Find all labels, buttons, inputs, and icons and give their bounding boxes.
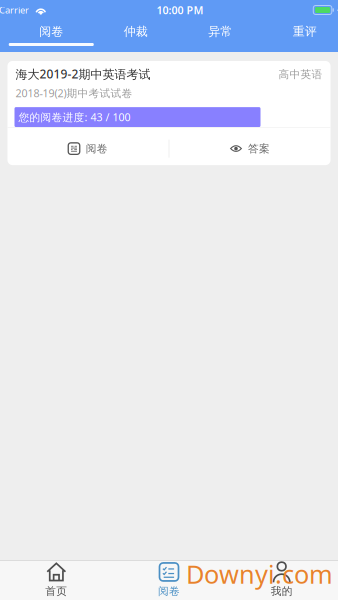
staticText: 您的阅卷进度: 43 / 100 (18, 110, 130, 124)
button[interactable]: 重评 (262, 20, 338, 52)
staticText: 10:00 PM (156, 3, 203, 17)
staticText: Carrier (0, 4, 29, 16)
button[interactable]: 异常 (178, 20, 262, 52)
staticText: 答案 (248, 142, 270, 155)
staticText: 首页 (45, 585, 67, 598)
button[interactable]: 首页 (0, 560, 113, 600)
staticText: 异常 (208, 24, 232, 39)
staticText: 2018-19(2)期中考试试卷 (15, 86, 132, 100)
staticText: 高中英语 (278, 68, 322, 81)
button[interactable]: 我的 (225, 560, 338, 600)
staticText: 海大2019-2期中英语考试 (15, 66, 150, 82)
button[interactable]: 阅卷 (9, 20, 93, 52)
staticText: 仲裁 (124, 24, 148, 39)
button[interactable]: 答案 (169, 132, 330, 165)
button[interactable]: 阅卷 (113, 560, 225, 600)
staticText: 我的 (271, 585, 293, 598)
button[interactable]: 仲裁 (93, 20, 178, 52)
staticText: 重评 (293, 24, 317, 39)
staticText: 阅卷 (158, 585, 180, 598)
staticText: 阅卷 (39, 24, 63, 39)
staticText: 阅卷 (86, 142, 108, 155)
staticText: Downyi.com (186, 557, 333, 591)
button[interactable]: 阅卷 (7, 132, 168, 165)
